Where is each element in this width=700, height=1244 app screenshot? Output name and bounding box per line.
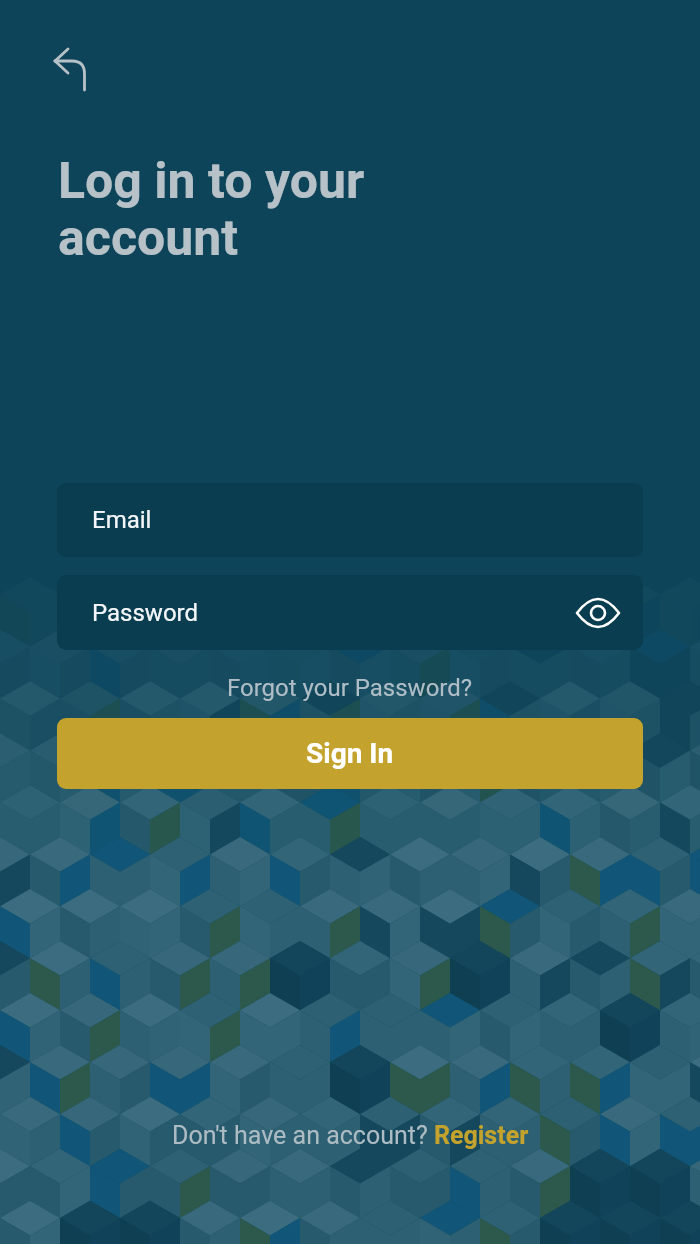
button[interactable] — [50, 44, 94, 98]
button[interactable]: Sign In — [57, 718, 643, 789]
button[interactable]: Don't have an account? Register — [172, 1121, 529, 1150]
staticText: Log in to your account — [58, 152, 365, 267]
button[interactable]: Forgot your Password? — [227, 674, 473, 702]
button[interactable]: Password — [57, 575, 643, 650]
staticText: Email — [92, 506, 152, 534]
staticText: Don't have an account? Register — [172, 1121, 529, 1150]
button[interactable] — [576, 596, 620, 630]
staticText: Sign In — [306, 737, 394, 770]
staticText: Password — [92, 599, 199, 627]
button[interactable]: Email — [57, 483, 643, 557]
